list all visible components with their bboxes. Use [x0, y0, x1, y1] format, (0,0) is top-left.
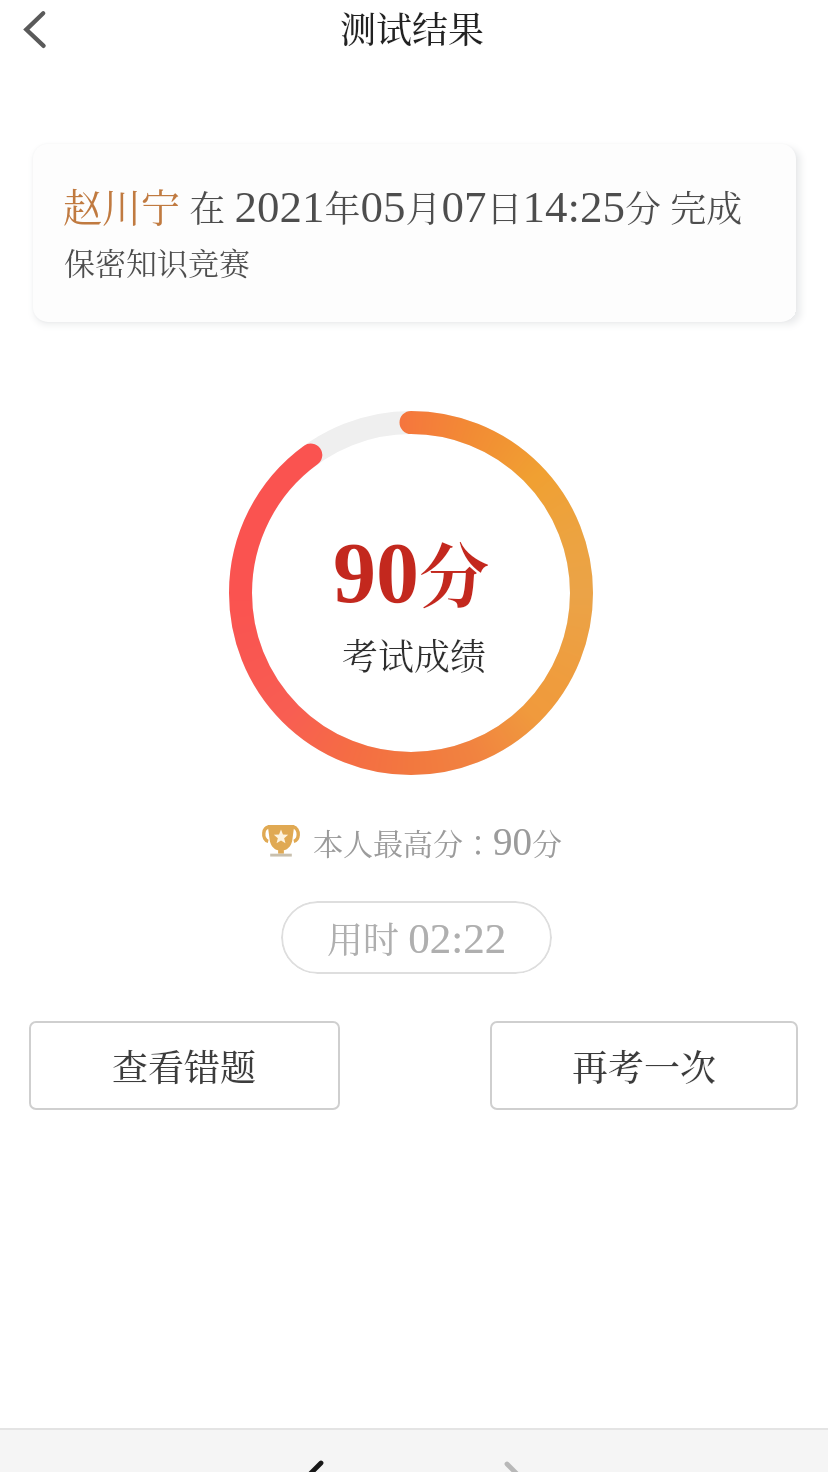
button[interactable]: Forward	[471, 1430, 547, 1472]
staticText: 本人最高分：90分	[313, 820, 562, 863]
staticText: 90分	[333, 521, 489, 622]
staticText: 用时 02:22	[327, 912, 507, 964]
button[interactable]: 再考一次	[490, 1021, 798, 1110]
staticText: 查看错题	[112, 1040, 257, 1092]
staticText: 赵川宁 在 2021年05月07日14:25分 完成	[63, 177, 743, 233]
button[interactable]: 查看错题	[29, 1021, 340, 1110]
staticText: 测试结果	[340, 2, 485, 54]
button[interactable]: Back	[281, 1430, 357, 1472]
staticText: 保密知识竞赛	[64, 239, 250, 284]
button[interactable]: 用时 02:22	[281, 901, 552, 974]
staticText: 再考一次	[572, 1040, 717, 1092]
button[interactable]: Back	[0, 0, 70, 60]
button[interactable]: 赵川宁 在 2021年05月07日14:25分 完成	[33, 144, 796, 322]
staticText: 考试成绩	[342, 629, 487, 681]
